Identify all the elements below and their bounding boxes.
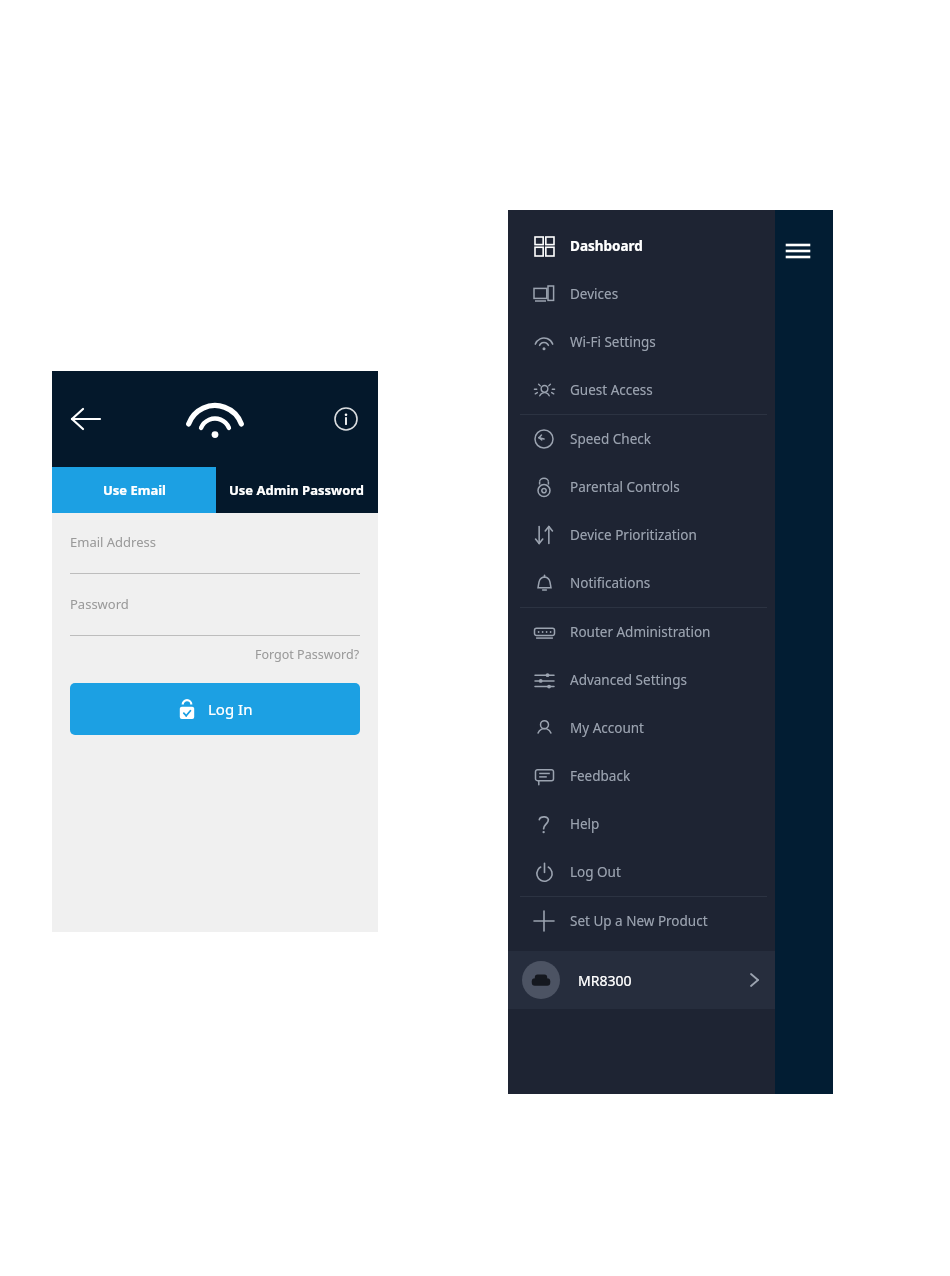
button[interactable]: Router Administration bbox=[508, 608, 775, 656]
button[interactable]: Notifications bbox=[508, 559, 775, 607]
button[interactable]: Advanced Settings bbox=[508, 656, 775, 704]
button[interactable]: Dashboard bbox=[508, 222, 775, 270]
button[interactable]: Devices bbox=[508, 270, 775, 318]
staticText: Set Up a New Product bbox=[570, 912, 708, 930]
button[interactable]: My Account bbox=[508, 704, 775, 752]
staticText: Feedback bbox=[570, 767, 631, 785]
staticText: Help bbox=[570, 815, 600, 833]
staticText: Devices bbox=[570, 285, 619, 303]
button[interactable]: Close menu bbox=[775, 228, 821, 274]
button[interactable]: MR8300 bbox=[508, 951, 775, 1009]
button[interactable]: Information bbox=[326, 399, 366, 439]
button[interactable]: Parental Controls bbox=[508, 463, 775, 511]
button[interactable]: Feedback bbox=[508, 752, 775, 800]
staticText: Password bbox=[70, 595, 129, 613]
button[interactable]: Guest Access bbox=[508, 366, 775, 414]
staticText: Email Address bbox=[70, 533, 156, 551]
button[interactable]: Forgot Password? bbox=[255, 644, 360, 665]
staticText: Device Prioritization bbox=[570, 526, 697, 544]
staticText: Use Email bbox=[103, 481, 166, 499]
staticText: Parental Controls bbox=[570, 478, 680, 496]
button[interactable]: Device Prioritization bbox=[508, 511, 775, 559]
staticText: Log In bbox=[208, 699, 253, 719]
button[interactable]: Log Out bbox=[508, 848, 775, 896]
staticText: Speed Check bbox=[570, 430, 651, 448]
staticText: MR8300 bbox=[578, 971, 632, 990]
staticText: Dashboard bbox=[570, 237, 643, 255]
button[interactable]: Help bbox=[508, 800, 775, 848]
staticText: Forgot Password? bbox=[255, 646, 360, 663]
staticText: Log Out bbox=[570, 863, 621, 881]
button[interactable]: Back bbox=[66, 397, 110, 441]
button[interactable]: Log In bbox=[70, 683, 360, 735]
staticText: Use Admin Password bbox=[229, 481, 365, 499]
button[interactable]: Set Up a New Product bbox=[508, 897, 775, 945]
button[interactable]: Speed Check bbox=[508, 415, 775, 463]
button[interactable]: Use Email bbox=[52, 467, 216, 513]
staticText: Notifications bbox=[570, 574, 651, 592]
staticText: Advanced Settings bbox=[570, 671, 687, 689]
button[interactable]: Wi-Fi Settings bbox=[508, 318, 775, 366]
staticText: Wi-Fi Settings bbox=[570, 333, 656, 351]
button[interactable]: Use Admin Password bbox=[216, 467, 378, 513]
staticText: My Account bbox=[570, 719, 644, 737]
staticText: Guest Access bbox=[570, 381, 653, 399]
staticText: Router Administration bbox=[570, 623, 711, 641]
